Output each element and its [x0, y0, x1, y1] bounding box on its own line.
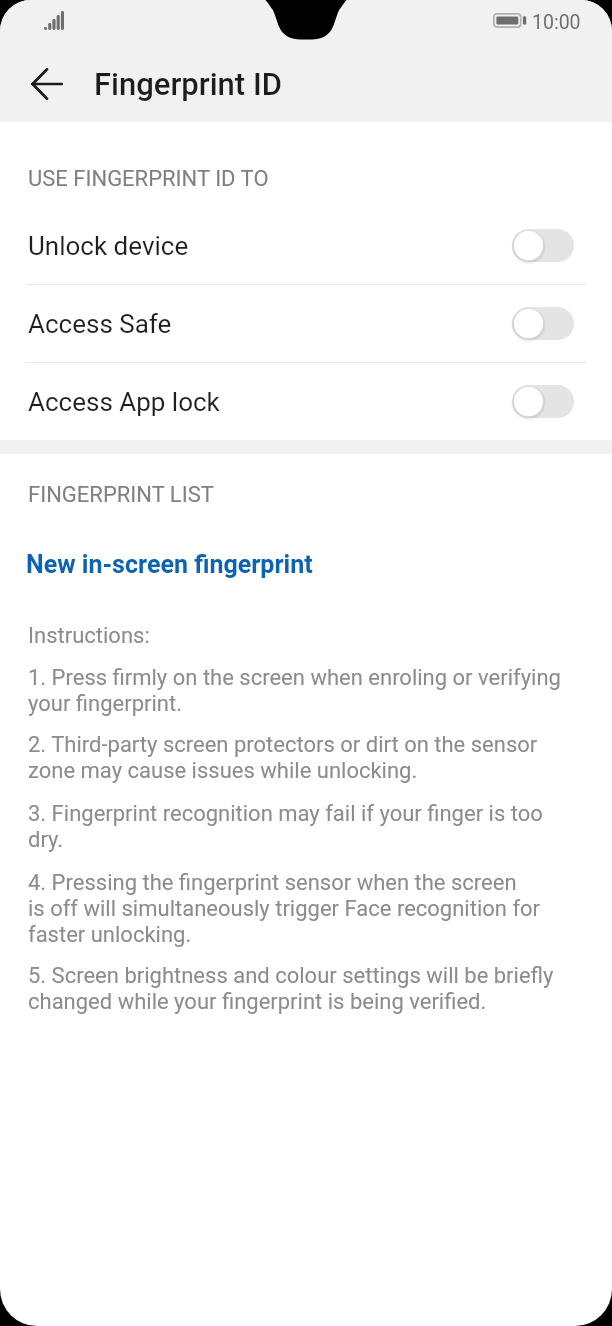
- staticText: Instructions:: [28, 622, 150, 648]
- staticText: 1. Press firmly on the screen when enrol…: [28, 664, 561, 716]
- button[interactable]: Unlock device: [0, 207, 612, 284]
- button[interactable]: Access App lock: [0, 363, 612, 440]
- staticText: 5. Screen brightness and colour settings…: [28, 962, 554, 1014]
- button[interactable]: New in-screen fingerprint: [0, 550, 612, 579]
- staticText: Fingerprint ID: [94, 66, 282, 102]
- staticText: Access Safe: [28, 309, 172, 339]
- button[interactable]: Access Safe: [0, 285, 612, 362]
- staticText: USE FINGERPRINT ID TO: [28, 166, 269, 192]
- staticText: 4. Pressing the fingerprint sensor when …: [28, 869, 541, 947]
- staticText: 10:00: [532, 11, 581, 34]
- staticText: Access App lock: [28, 387, 220, 417]
- staticText: 3. Fingerprint recognition may fail if y…: [28, 800, 543, 852]
- button[interactable]: Back: [16, 53, 78, 115]
- staticText: 2. Third-party screen protectors or dirt…: [28, 731, 538, 783]
- staticText: Unlock device: [28, 231, 189, 261]
- staticText: New in-screen fingerprint: [26, 550, 313, 579]
- staticText: FINGERPRINT LIST: [28, 482, 214, 508]
